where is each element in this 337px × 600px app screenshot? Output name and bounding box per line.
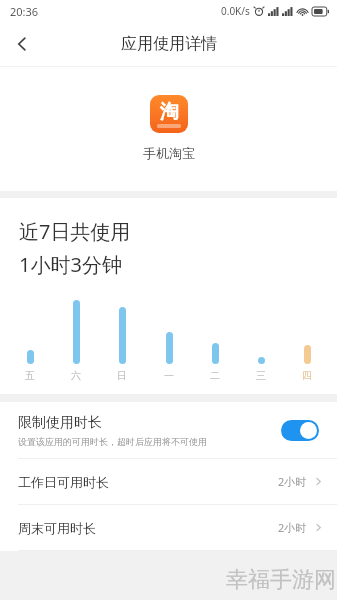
staticText: 限制使用时长 (18, 414, 102, 432)
staticText: 近7日共使用 (19, 218, 131, 245)
staticText: 六 (58, 369, 94, 382)
staticText: 应用使用详情 (121, 34, 217, 54)
staticText: 二 (197, 369, 233, 382)
button[interactable]: 周末可用时长 (0, 505, 337, 550)
staticText: 三 (243, 369, 279, 382)
staticText: 四 (289, 369, 325, 382)
button[interactable]: 工作日可用时长 (0, 459, 337, 504)
staticText: 2小时 (278, 520, 307, 535)
staticText: 周末可用时长 (18, 520, 278, 536)
staticText: 幸福手游网 (226, 566, 336, 594)
staticText: 1小时3分钟 (19, 251, 122, 278)
staticText: 2小时 (278, 474, 307, 489)
staticText: 设置该应用的可用时长，超时后应用将不可使用 (18, 436, 207, 447)
staticText: 淘 (160, 100, 179, 124)
button[interactable]: 限制使用时长 (0, 402, 337, 458)
staticText: 20:36 (10, 4, 39, 19)
button[interactable]: 限制使用时长开关 (281, 420, 319, 441)
staticText: 0.0K/s (221, 4, 250, 18)
button[interactable]: 返回 (0, 22, 44, 66)
staticText: 五 (12, 369, 48, 382)
staticText: 一 (151, 369, 187, 382)
staticText: 工作日可用时长 (18, 474, 278, 490)
staticText: 手机淘宝 (143, 145, 195, 161)
staticText: 日 (104, 369, 140, 382)
